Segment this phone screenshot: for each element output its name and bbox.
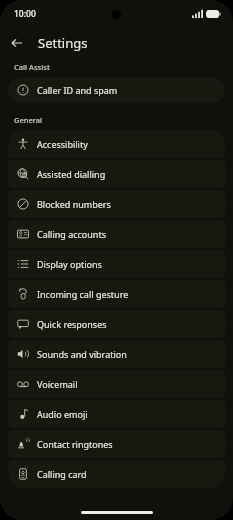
button[interactable]: Voicemail bbox=[8, 370, 225, 398]
staticText: Voicemail bbox=[37, 378, 78, 390]
button[interactable]: Calling accounts bbox=[8, 220, 225, 248]
staticText: Settings bbox=[38, 34, 88, 52]
button[interactable]: Back bbox=[5, 31, 29, 55]
button[interactable]: Calling card bbox=[8, 460, 225, 488]
staticText: 10:00 bbox=[14, 8, 36, 20]
button[interactable]: Caller ID and spam bbox=[8, 77, 225, 103]
button[interactable]: Sounds and vibration bbox=[8, 340, 225, 368]
button[interactable]: Assisted dialling bbox=[8, 160, 225, 188]
button[interactable]: Display options bbox=[8, 250, 225, 278]
button[interactable]: Accessibility bbox=[8, 130, 225, 158]
staticText: Quick responses bbox=[37, 318, 107, 330]
button[interactable]: Audio emoji bbox=[8, 400, 225, 428]
button[interactable]: Blocked numbers bbox=[8, 190, 225, 218]
staticText: Accessibility bbox=[37, 138, 88, 150]
button[interactable]: Incoming call gesture bbox=[8, 280, 225, 308]
staticText: Calling card bbox=[37, 468, 87, 480]
staticText: Blocked numbers bbox=[37, 198, 111, 210]
staticText: Calling accounts bbox=[37, 228, 106, 240]
staticText: Audio emoji bbox=[37, 408, 88, 420]
button[interactable]: Quick responses bbox=[8, 310, 225, 338]
staticText: Caller ID and spam bbox=[37, 84, 118, 96]
staticText: Assisted dialling bbox=[37, 168, 106, 180]
staticText: General bbox=[14, 115, 43, 125]
button[interactable]: Contact ringtones bbox=[8, 430, 225, 458]
staticText: Contact ringtones bbox=[37, 438, 113, 450]
staticText: Call Assist bbox=[14, 62, 50, 72]
staticText: Sounds and vibration bbox=[37, 348, 127, 360]
staticText: Incoming call gesture bbox=[37, 288, 129, 300]
staticText: Display options bbox=[37, 258, 102, 270]
